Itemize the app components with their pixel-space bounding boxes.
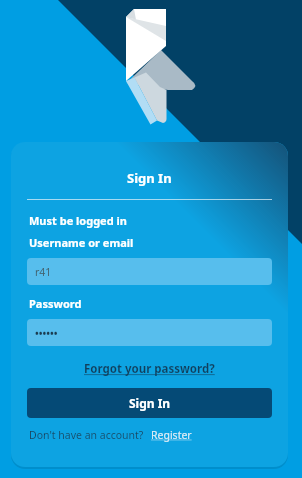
- button[interactable]: Register: [151, 428, 192, 442]
- staticText: ••••••: [35, 326, 58, 340]
- staticText: Must be logged in: [29, 213, 127, 228]
- staticText: r41: [35, 265, 52, 279]
- staticText: Sign In: [127, 169, 172, 187]
- staticText: Username or email: [29, 235, 134, 250]
- button[interactable]: ••••••: [27, 319, 272, 346]
- button[interactable]: Forgot your password?: [84, 361, 215, 377]
- button[interactable]: Sign In: [27, 388, 272, 418]
- staticText: Password: [29, 296, 82, 311]
- staticText: Don't have an account?: [29, 428, 144, 442]
- button[interactable]: r41: [27, 258, 272, 285]
- staticText: Sign In: [129, 395, 171, 411]
